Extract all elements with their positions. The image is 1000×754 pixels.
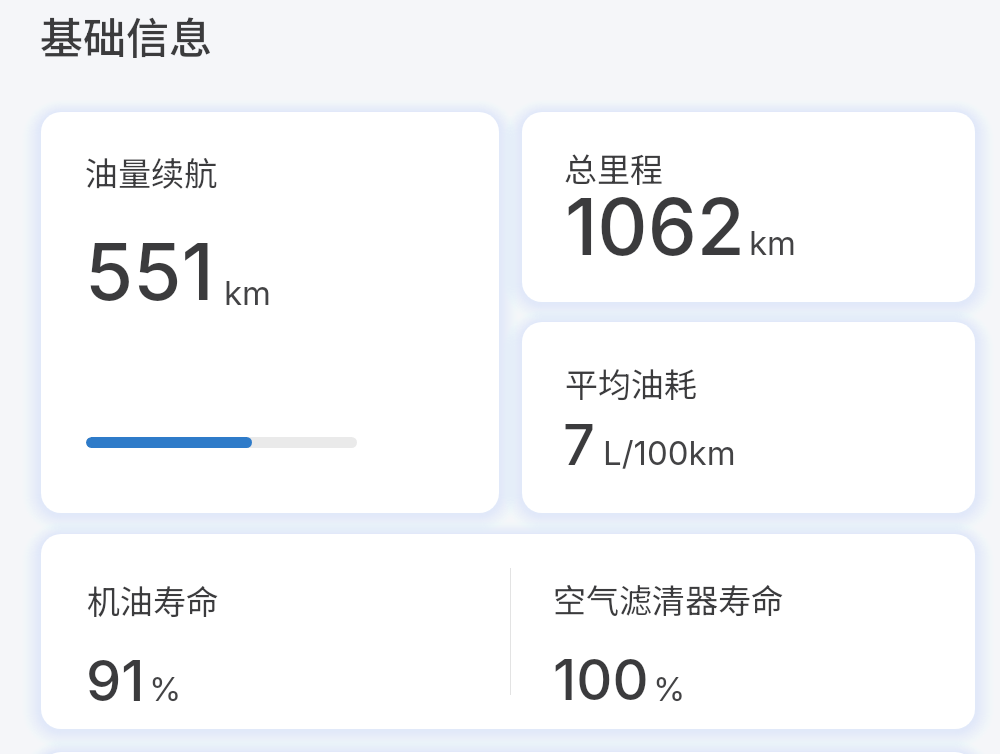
staticText: 空气滤清器寿命 <box>553 575 784 623</box>
staticText: 1062 <box>565 179 745 273</box>
staticText: 基础信息 <box>40 4 212 66</box>
staticText: 总里程 <box>564 144 663 192</box>
staticText: 平均油耗 <box>565 359 697 407</box>
button[interactable]: 平均油耗 <box>522 322 975 513</box>
staticText: L/100km <box>603 433 736 473</box>
staticText: 91 <box>86 647 145 715</box>
button[interactable]: 空气滤清器寿命 <box>511 534 975 729</box>
staticText: % <box>653 669 686 709</box>
staticText: 100 <box>553 646 649 714</box>
staticText: 机油寿命 <box>87 576 219 624</box>
staticText: 油量续航 <box>85 148 217 196</box>
staticText: km <box>224 273 272 313</box>
staticText: % <box>149 669 182 709</box>
staticText: 7 <box>563 411 595 479</box>
button[interactable]: 机油寿命 <box>41 534 510 729</box>
staticText: 551 <box>85 224 214 318</box>
button[interactable]: 油量续航 <box>41 112 499 513</box>
button[interactable]: 总里程 <box>522 112 975 302</box>
staticText: km <box>749 223 797 263</box>
